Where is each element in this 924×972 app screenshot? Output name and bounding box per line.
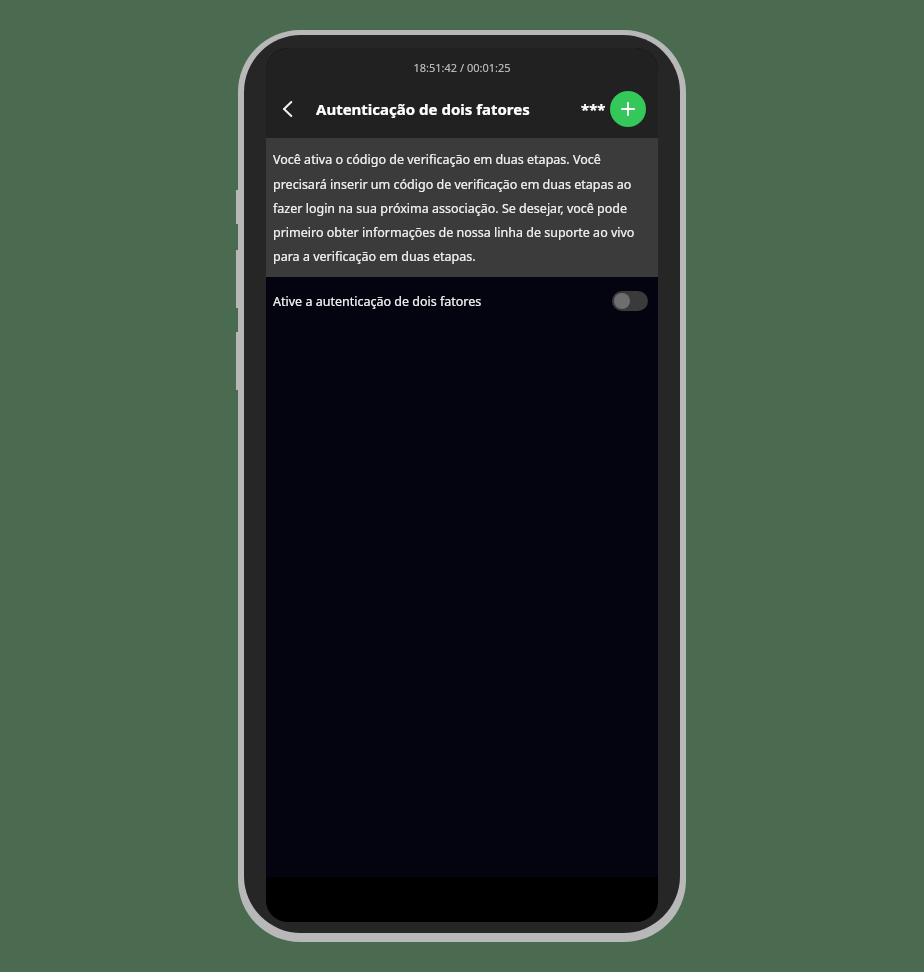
button[interactable]: Add [610,91,646,127]
staticText: Autenticação de dois fatores [316,99,530,119]
button[interactable]: Back [266,87,310,131]
button[interactable]: Ative a autenticação de dois fatores [266,277,658,325]
button[interactable]: More options [578,89,608,129]
staticText: *** [581,99,606,119]
staticText: Ative a autenticação de dois fatores [273,293,482,310]
staticText: 18:51:42 / 00:01:25 [413,60,511,75]
staticText: Você ativa o código de verificação em du… [273,151,651,264]
